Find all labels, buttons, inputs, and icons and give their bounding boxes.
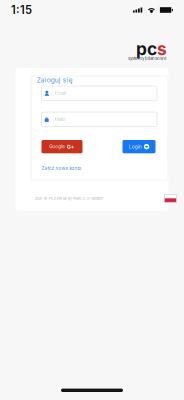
staticText: s	[157, 38, 167, 59]
staticText: Email	[55, 91, 66, 96]
staticText: Hasło	[55, 117, 66, 122]
button[interactable]: Google	[41, 140, 82, 153]
staticText: 1:15	[11, 3, 32, 17]
button[interactable]: Email	[41, 86, 157, 100]
staticText: Zaloguj się	[37, 76, 73, 84]
staticText: Załóż nowe konto	[41, 165, 81, 171]
button[interactable]: Hasło	[41, 112, 157, 126]
button[interactable]: Załóż nowe konto	[41, 166, 81, 171]
button[interactable]: Login	[122, 140, 155, 153]
staticText: pc	[136, 38, 157, 59]
staticText: Login	[129, 144, 142, 149]
staticText: Google	[49, 144, 65, 149]
staticText: 2021 © PCS Portal by PsoiCS. v7.920821	[35, 196, 104, 201]
staticText: systemy bilansowe	[128, 56, 167, 61]
staticText: G+	[67, 143, 75, 150]
